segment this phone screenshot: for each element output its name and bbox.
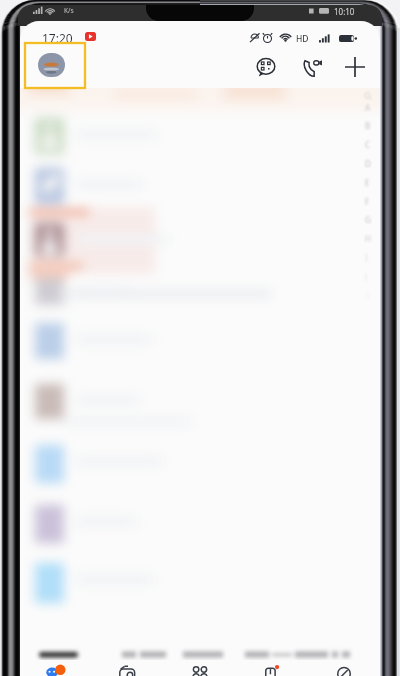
staticText: K/s [64,6,74,15]
staticText: D [365,158,371,169]
staticText: E [365,177,370,188]
button[interactable]: Moments [92,664,164,676]
staticText: H [365,233,371,244]
button[interactable]: Profile [38,53,65,77]
staticText: G [365,214,371,225]
staticText: 10:10 [334,6,355,17]
button[interactable]: Me [308,664,380,676]
staticText: A [365,102,371,113]
button[interactable]: Chats [20,664,92,676]
button[interactable]: Discover [236,664,308,676]
staticText: 17:20 [42,30,73,46]
button[interactable]: Contacts [164,664,236,676]
staticText: C [365,139,371,150]
button[interactable]: Scan QR code [248,49,284,85]
staticText: HD [296,33,309,45]
button[interactable]: Video call [294,49,330,85]
staticText: F [365,196,370,207]
staticText: B [365,120,371,131]
button[interactable]: Add [337,49,373,85]
